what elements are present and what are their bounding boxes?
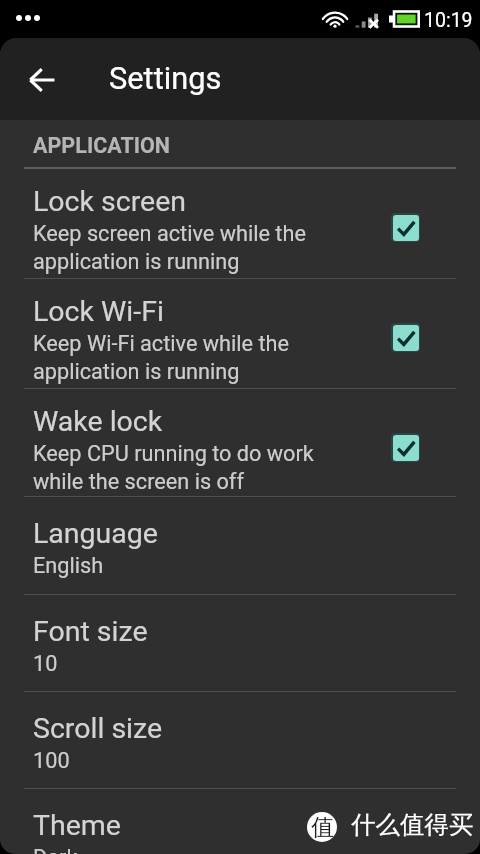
staticText: Dark [33, 845, 78, 854]
staticText: APPLICATION [33, 133, 171, 158]
staticText: 10 [33, 651, 58, 676]
staticText: Settings [109, 60, 222, 96]
staticText: Lock screen [33, 185, 187, 218]
button[interactable]: Wake lock [0, 389, 480, 496]
staticText: 100 [33, 748, 70, 773]
staticText: Language [33, 517, 158, 550]
button[interactable]: Scroll size [0, 692, 480, 788]
staticText: 什么值得买 [351, 809, 474, 840]
staticText: Keep CPU running to do work while the sc… [33, 441, 314, 494]
staticText: Theme [33, 809, 121, 842]
staticText: Keep Wi-Fi active while the application … [33, 331, 290, 384]
button[interactable]: Wake lock [391, 433, 420, 462]
staticText: Lock Wi-Fi [33, 295, 164, 328]
staticText: English [33, 553, 104, 578]
staticText: Font size [33, 615, 148, 648]
button[interactable]: Theme [0, 789, 480, 854]
button[interactable]: Lock Wi-Fi [0, 279, 480, 388]
staticText: Keep screen active while the application… [33, 221, 306, 274]
button[interactable]: Font size [0, 595, 480, 691]
button[interactable]: Back [18, 56, 66, 104]
button[interactable]: Lock screen [0, 169, 480, 278]
button[interactable]: Lock screen [391, 213, 420, 242]
staticText: Wake lock [33, 405, 163, 438]
button[interactable]: Language [0, 497, 480, 594]
staticText: 10:19 [424, 9, 473, 32]
button[interactable]: Lock Wi-Fi [391, 323, 420, 352]
staticText: 值 [311, 813, 334, 842]
staticText: Scroll size [33, 712, 163, 745]
